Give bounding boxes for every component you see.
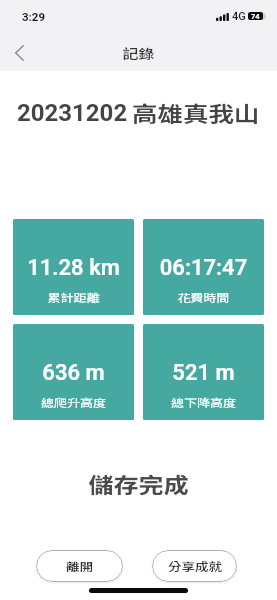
- staticText: 總爬升高度: [13, 394, 134, 411]
- staticText: 11.28 km: [13, 255, 134, 281]
- button[interactable]: 離開: [36, 550, 123, 582]
- staticText: 花費時間: [143, 289, 264, 306]
- staticText: 3:29: [22, 10, 46, 23]
- staticText: 分享成就: [168, 557, 222, 574]
- button[interactable]: 分享成就: [152, 550, 237, 582]
- staticText: 高雄真我山: [132, 96, 260, 128]
- staticText: 4G: [232, 10, 246, 23]
- staticText: 636 m: [13, 360, 134, 386]
- staticText: 離開: [66, 557, 93, 574]
- staticText: 儲存完成: [0, 469, 277, 499]
- staticText: 06:17:47: [143, 255, 264, 281]
- staticText: 20231202: [17, 99, 128, 127]
- staticText: 總下降高度: [143, 394, 264, 411]
- staticText: 521 m: [143, 360, 264, 386]
- staticText: 74: [251, 12, 260, 20]
- staticText: 累計距離: [13, 289, 134, 306]
- button[interactable]: 11.28 km: [13, 219, 134, 315]
- button[interactable]: 636 m: [13, 324, 134, 420]
- button[interactable]: Back: [1, 34, 39, 72]
- button[interactable]: 06:17:47: [143, 219, 264, 315]
- staticText: 記錄: [0, 43, 277, 62]
- button[interactable]: 521 m: [143, 324, 264, 420]
